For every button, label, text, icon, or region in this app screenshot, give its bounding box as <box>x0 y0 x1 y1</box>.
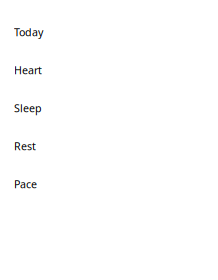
button[interactable]: Pace <box>0 165 218 203</box>
button[interactable]: Rest <box>0 127 218 165</box>
staticText: Pace <box>14 177 37 191</box>
button[interactable]: Heart <box>0 51 218 89</box>
button[interactable]: Sleep <box>0 89 218 127</box>
staticText: Today <box>14 25 43 39</box>
staticText: Heart <box>14 63 42 77</box>
staticText: Rest <box>14 139 36 153</box>
staticText: Sleep <box>14 101 42 115</box>
button[interactable]: Today <box>0 13 218 51</box>
